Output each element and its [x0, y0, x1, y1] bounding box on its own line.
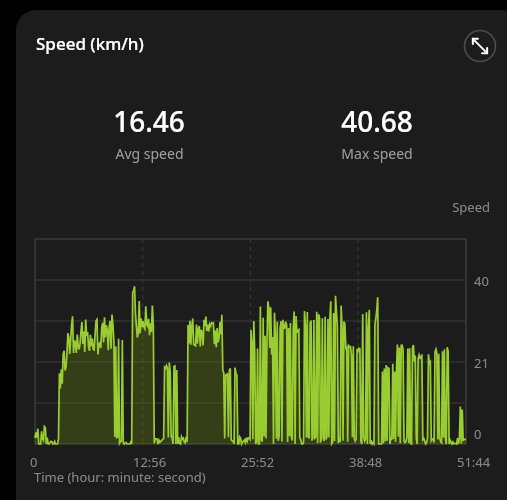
staticText: 25:52 [241, 453, 275, 471]
staticText: 0 [474, 425, 482, 443]
button[interactable]: 40.68 [302, 102, 452, 163]
staticText: Avg speed [115, 144, 184, 163]
staticText: Speed (km/h) [36, 32, 144, 55]
staticText: 21 [474, 354, 489, 372]
staticText: Max speed [341, 144, 413, 163]
staticText: 16.46 [113, 102, 185, 140]
staticText: 38:48 [349, 453, 383, 471]
staticText: 0 [30, 453, 38, 471]
staticText: Time (hour: minute: second) [34, 468, 206, 486]
button[interactable]: 16.46 [74, 102, 224, 163]
staticText: 40 [474, 272, 489, 290]
staticText: 12:56 [133, 453, 167, 471]
staticText: 40.68 [341, 102, 413, 140]
staticText: 51:44 [457, 453, 491, 471]
staticText: Speed [396, 198, 490, 216]
button[interactable]: Expand chart to full screen [460, 26, 500, 66]
